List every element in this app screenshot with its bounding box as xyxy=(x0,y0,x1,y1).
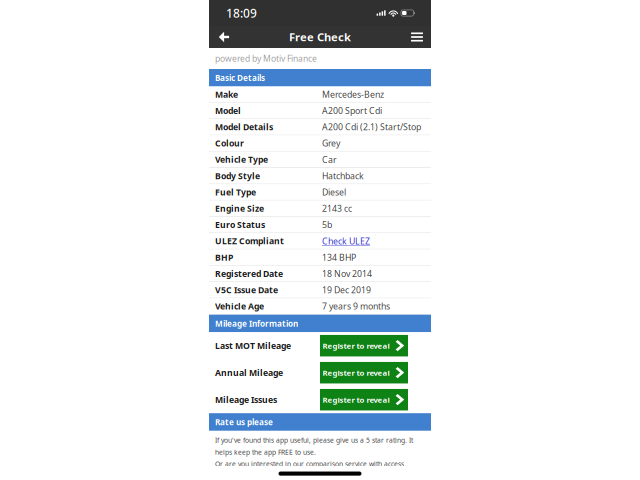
staticText: Mileage Information xyxy=(215,318,298,329)
staticText: Vehicle Type xyxy=(215,154,268,165)
staticText: Basic Details xyxy=(215,72,265,83)
staticText: 5b xyxy=(322,219,332,231)
button[interactable]: Register to reveal xyxy=(320,362,408,383)
staticText: Mercedes-Benz xyxy=(322,88,384,100)
staticText: Vehicle Age xyxy=(215,300,264,312)
staticText: Hatchback xyxy=(322,170,364,182)
staticText: Register to reveal xyxy=(322,394,389,405)
staticText: powered by Motiv Finance xyxy=(215,53,317,64)
staticText: A200 Sport Cdi xyxy=(322,105,382,117)
staticText: Body Style xyxy=(215,170,260,182)
staticText: Registered Date xyxy=(215,268,283,279)
staticText: If you've found this app useful, please … xyxy=(215,436,413,445)
button[interactable]: Register to reveal xyxy=(320,389,408,410)
staticText: Car xyxy=(322,154,337,165)
staticText: Diesel xyxy=(322,186,346,198)
staticText: Mileage Issues xyxy=(215,394,277,406)
button[interactable]: Register to reveal xyxy=(320,335,408,356)
staticText: A200 Cdi (2.1) Start/Stop xyxy=(322,121,421,133)
staticText: Colour xyxy=(215,137,244,149)
staticText: Model Details xyxy=(215,121,273,133)
staticText: Euro Status xyxy=(215,219,265,231)
staticText: 18:09 xyxy=(226,5,257,21)
staticText: Engine Size xyxy=(215,202,264,214)
staticText: 19 Dec 2019 xyxy=(322,284,371,296)
staticText: Or are you interested in our comparison … xyxy=(215,459,404,469)
button[interactable]: Back xyxy=(213,26,235,48)
staticText: Fuel Type xyxy=(215,186,256,198)
staticText: Last MOT Mileage xyxy=(215,340,291,352)
staticText: Check ULEZ xyxy=(322,235,370,247)
staticText: Register to reveal xyxy=(322,367,389,378)
staticText: BHP xyxy=(215,251,233,263)
staticText: Grey xyxy=(322,137,340,149)
staticText: 18 Nov 2014 xyxy=(322,268,372,280)
staticText: V5C Issue Date xyxy=(215,284,278,296)
staticText: Model xyxy=(215,105,241,116)
button[interactable]: Menu xyxy=(406,26,428,48)
staticText: helps keep the app FREE to use. xyxy=(215,448,316,457)
staticText: Annual Mileage xyxy=(215,367,283,379)
staticText: Register to reveal xyxy=(322,340,389,351)
staticText: 2143 cc xyxy=(322,202,352,214)
staticText: 7 years 9 months xyxy=(322,300,390,312)
staticText: ULEZ Compliant xyxy=(215,235,284,247)
staticText: 134 BHP xyxy=(322,251,356,263)
staticText: Free Check xyxy=(289,29,351,45)
staticText: Rate us please xyxy=(215,416,273,428)
staticText: Make xyxy=(215,88,238,100)
